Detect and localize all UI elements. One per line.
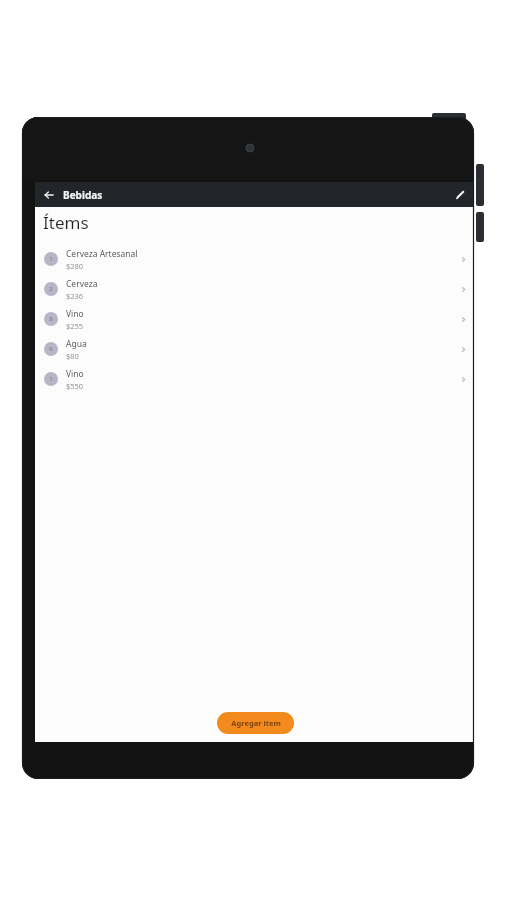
button[interactable]: Back [35, 182, 63, 207]
staticText: Cerveza [66, 278, 98, 290]
staticText: $550 [66, 381, 84, 391]
button[interactable]: 8 [35, 304, 474, 334]
staticText: $280 [66, 261, 84, 271]
staticText: Bebidas [63, 188, 103, 202]
button[interactable]: 2 [35, 274, 474, 304]
button[interactable]: 1 [35, 244, 474, 274]
staticText: $255 [66, 321, 84, 331]
staticText: 6 [49, 345, 53, 353]
staticText: $80 [66, 351, 79, 361]
staticText: Ítems [43, 211, 89, 234]
staticText: Agregar item [231, 718, 281, 728]
staticText: Vino [66, 368, 84, 380]
staticText: $236 [66, 291, 84, 301]
button[interactable]: 6 [35, 334, 474, 364]
button[interactable]: Agregar item [217, 712, 294, 734]
staticText: 2 [49, 285, 53, 293]
staticText: Agua [66, 338, 87, 350]
staticText: 1 [49, 255, 53, 263]
button[interactable]: 1 [35, 364, 474, 394]
staticText: 1 [49, 375, 53, 383]
staticText: 8 [49, 315, 53, 323]
staticText: Vino [66, 308, 84, 320]
staticText: Cerveza Artesanal [66, 248, 138, 260]
button[interactable]: Edit [445, 182, 474, 207]
